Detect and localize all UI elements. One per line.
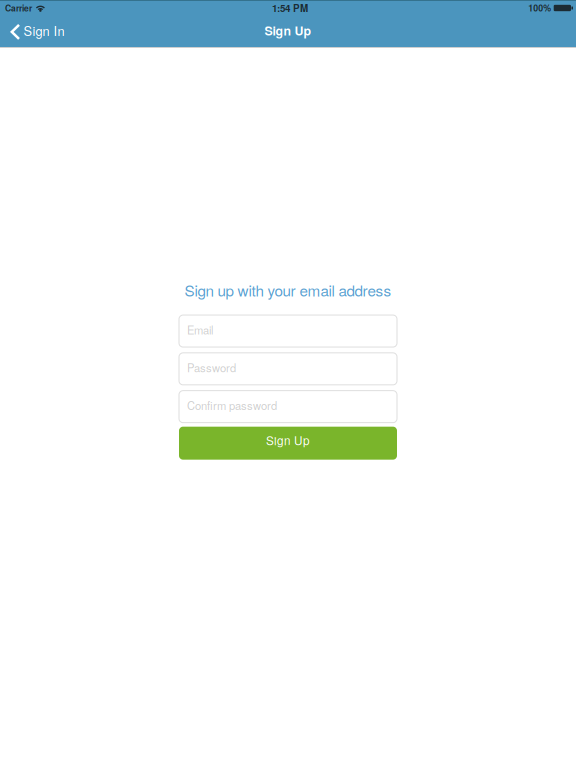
staticText: Sign In <box>23 21 64 40</box>
staticText: 100% <box>528 2 551 14</box>
staticText: Email <box>187 321 213 337</box>
button[interactable]: Sign Up <box>179 427 397 460</box>
button[interactable]: Password <box>179 353 397 385</box>
staticText: Sign up with your email address <box>184 279 391 301</box>
staticText: Confirm password <box>187 397 277 413</box>
staticText: Carrier <box>5 2 32 14</box>
staticText: Password <box>187 359 236 375</box>
staticText: Sign Up <box>266 432 310 449</box>
button[interactable]: Confirm password <box>179 391 397 423</box>
button[interactable]: Email <box>179 315 397 347</box>
staticText: 1:54 PM <box>272 1 308 15</box>
staticText: Sign Up <box>264 22 311 39</box>
button[interactable]: Sign In <box>0 20 72 41</box>
